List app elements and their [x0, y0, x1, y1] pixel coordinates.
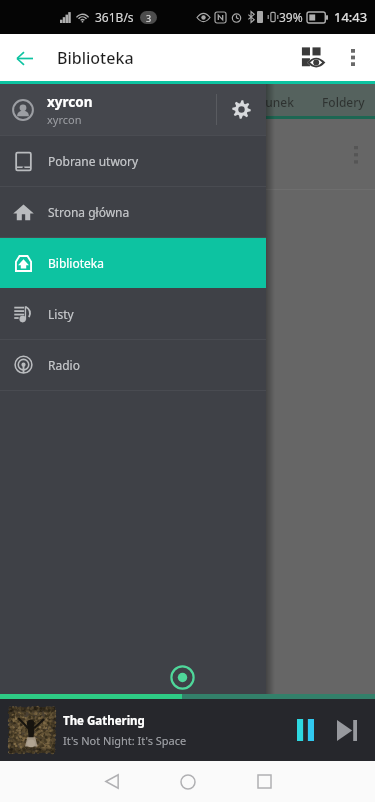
staticText: Biblioteka	[48, 255, 104, 271]
staticText: Radio	[48, 357, 80, 373]
staticText: 14:43	[334, 8, 368, 26]
button[interactable]: Settings	[217, 84, 266, 135]
staticText: Listy	[48, 306, 74, 322]
staticText: Biblioteka	[57, 47, 134, 69]
staticText: Foldery	[322, 94, 365, 110]
button[interactable]: Pause	[284, 704, 326, 756]
button[interactable]: Back	[74, 761, 150, 802]
staticText: 39%	[279, 9, 303, 25]
staticText: The Gathering	[63, 713, 145, 729]
button[interactable]: xyrcon	[0, 84, 266, 135]
button[interactable]: Biblioteka	[0, 238, 266, 288]
button[interactable]: Strona główna	[0, 187, 266, 237]
staticText: 361B/s	[95, 9, 134, 25]
staticText: Strona główna	[48, 204, 130, 220]
staticText: xyrcon	[47, 93, 93, 111]
staticText: 3	[146, 12, 152, 24]
button[interactable]: More options	[335, 34, 371, 81]
button[interactable]: The Gathering	[0, 699, 375, 761]
button[interactable]: Home	[150, 761, 226, 802]
staticText: It's Not Night: It's Space	[63, 733, 187, 748]
button[interactable]: Radio	[0, 340, 266, 390]
button[interactable]: Next	[326, 704, 368, 756]
button[interactable]: Recents	[226, 761, 302, 802]
button[interactable]: Listy	[0, 289, 266, 339]
button[interactable]: Back	[0, 34, 48, 81]
button[interactable]: Pobrane utwory	[0, 136, 266, 186]
button[interactable]: View mode	[289, 34, 335, 81]
staticText: Pobrane utwory	[48, 153, 139, 169]
staticText: xyrcon	[47, 112, 82, 127]
staticText: Wykonunek	[226, 94, 294, 110]
